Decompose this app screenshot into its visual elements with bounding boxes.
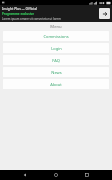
staticText: Menu bbox=[50, 24, 62, 30]
staticText: News bbox=[51, 70, 62, 75]
button[interactable]: Back bbox=[20, 170, 30, 180]
button[interactable]: Home bbox=[51, 170, 61, 180]
button[interactable]: Open bbox=[99, 8, 110, 19]
staticText: Commissions bbox=[43, 34, 69, 39]
button[interactable]: About bbox=[3, 79, 109, 89]
staticText: Insight Plus — Official bbox=[2, 7, 38, 11]
button[interactable]: Login bbox=[3, 43, 109, 53]
staticText: Login bbox=[51, 46, 62, 51]
staticText: About bbox=[50, 82, 62, 87]
button[interactable]: Commissions bbox=[3, 31, 109, 41]
staticText: Lorem ipsum ornare sit consectetur ut lo… bbox=[2, 17, 61, 21]
staticText: FAQ bbox=[52, 58, 60, 63]
button[interactable]: FAQ bbox=[3, 55, 109, 65]
button[interactable]: Recent apps bbox=[82, 170, 92, 180]
button[interactable]: News bbox=[3, 67, 109, 77]
staticText: Programme exclusive bbox=[2, 12, 35, 16]
